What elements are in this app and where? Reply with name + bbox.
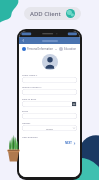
staticText: Mobile Number * bbox=[22, 85, 42, 88]
staticText: Education bbox=[64, 47, 77, 51]
staticText: Select bbox=[46, 127, 53, 130]
button[interactable]: Personal Information bbox=[22, 47, 53, 51]
staticText: Email bbox=[22, 109, 29, 112]
button[interactable]: Gender bbox=[22, 121, 77, 133]
other: Back bbox=[22, 39, 25, 42]
staticText: Date of Birth bbox=[22, 97, 37, 100]
staticText: ADD Client bbox=[30, 10, 61, 18]
other: Add bbox=[66, 9, 75, 18]
staticText: Personal Information bbox=[27, 47, 53, 51]
button[interactable]: ADD Client bbox=[24, 7, 81, 20]
button[interactable]: Education bbox=[59, 47, 77, 51]
staticText: Gender bbox=[22, 121, 31, 124]
button[interactable]: Back bbox=[19, 37, 80, 44]
staticText: NEXT bbox=[65, 141, 72, 145]
button[interactable]: Profile photo bbox=[42, 54, 58, 70]
staticText: Client name * bbox=[22, 73, 38, 76]
button[interactable]: Email bbox=[22, 109, 77, 121]
other: Pick date bbox=[72, 102, 76, 106]
button[interactable]: Date of Birth bbox=[22, 97, 77, 109]
button[interactable]: Mobile Number * bbox=[22, 85, 77, 97]
button[interactable]: Client name * bbox=[22, 73, 77, 85]
button[interactable]: NEXT bbox=[64, 140, 77, 146]
staticText: Next question bbox=[22, 135, 38, 138]
